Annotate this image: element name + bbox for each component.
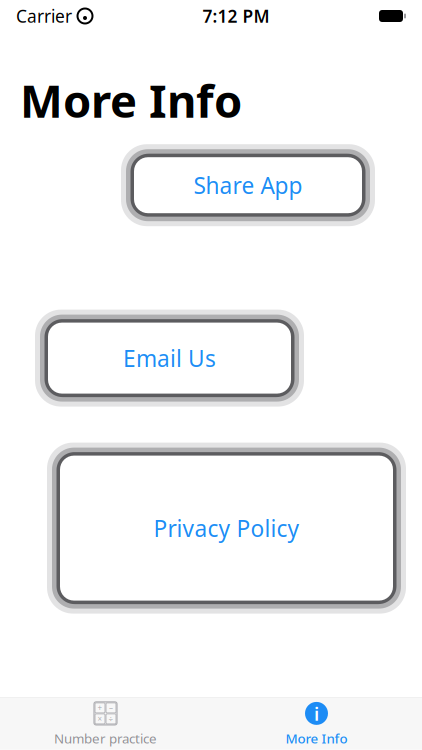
staticText: Email Us (123, 343, 216, 373)
staticText: Carrier (16, 4, 72, 27)
button[interactable]: i (211, 698, 422, 750)
staticText: Privacy Policy (153, 513, 299, 543)
staticText: More Info (20, 70, 242, 130)
staticText: Number practice (54, 729, 157, 747)
staticText: 7:12 PM (202, 4, 269, 27)
staticText: More Info (285, 729, 347, 747)
button[interactable]: Privacy Policy (47, 443, 406, 614)
staticText: ÷ (108, 714, 113, 724)
button[interactable]: Email Us (35, 310, 304, 407)
staticText: – (109, 703, 113, 713)
button[interactable]: Share App (121, 144, 375, 226)
staticText: i (314, 701, 319, 726)
staticText: Share App (193, 170, 302, 200)
staticText: + (97, 703, 102, 713)
button[interactable]: + (0, 698, 211, 750)
staticText: × (97, 714, 102, 724)
